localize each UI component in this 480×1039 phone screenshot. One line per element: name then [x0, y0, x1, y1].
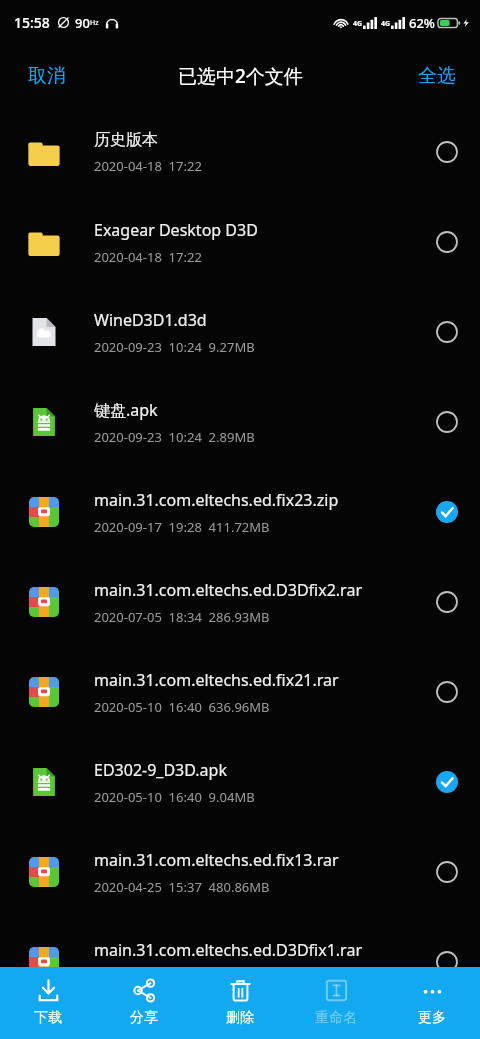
button[interactable]: main.31.com.eltechs.ed.fix13.rar — [0, 827, 480, 917]
button[interactable]: 删除 — [192, 967, 288, 1039]
button[interactable]: 更多 — [384, 967, 480, 1039]
button[interactable]: Not selected — [420, 575, 474, 629]
staticText: 2020-04-20 11:02 280.00MB — [94, 968, 270, 986]
button[interactable]: main.31.com.eltechs.ed.fix23.zip — [0, 467, 480, 557]
staticText: main.31.com.eltechs.ed.fix13.rar — [94, 849, 339, 871]
staticText: 全选 — [418, 64, 456, 88]
button[interactable]: 历史版本 — [0, 107, 480, 197]
staticText: main.31.com.eltechs.ed.fix23.zip — [94, 489, 339, 511]
button[interactable]: 下载 — [0, 967, 96, 1039]
staticText: 4G — [353, 19, 363, 29]
staticText: 2020-04-18 17:22 — [94, 248, 202, 266]
staticText: 90 — [75, 14, 90, 32]
button[interactable]: Not selected — [420, 395, 474, 449]
staticText: 2020-09-23 10:24 9.27MB — [94, 338, 255, 356]
staticText: 取消 — [28, 64, 66, 88]
button[interactable]: Selected — [420, 755, 474, 809]
staticText: WineD3D1.d3d — [94, 309, 207, 331]
staticText: 更多 — [418, 1009, 446, 1027]
staticText: 4G — [381, 19, 391, 29]
button[interactable]: Not selected — [420, 125, 474, 179]
button[interactable]: Selected — [420, 485, 474, 539]
button[interactable]: main.31.com.eltechs.ed.D3Dfix1.rar — [0, 917, 480, 1007]
staticText: 已选中2个文件 — [178, 63, 303, 89]
button[interactable]: Not selected — [420, 215, 474, 269]
staticText: main.31.com.eltechs.ed.D3Dfix2.rar — [94, 579, 362, 601]
button[interactable]: WineD3D1.d3d — [0, 287, 480, 377]
button[interactable]: main.31.com.eltechs.ed.D3Dfix2.rar — [0, 557, 480, 647]
staticText: 历史版本 — [94, 130, 158, 150]
staticText: 下载 — [34, 1009, 62, 1027]
staticText: 2020-04-18 17:22 — [94, 157, 202, 175]
button[interactable]: 分享 — [96, 967, 192, 1039]
button[interactable]: Exagear Desktop D3D — [0, 197, 480, 287]
button[interactable]: 全选 — [394, 52, 480, 100]
staticText: Exagear Desktop D3D — [94, 219, 258, 241]
staticText: 重命名 — [315, 1009, 357, 1027]
staticText: main.31.com.eltechs.ed.D3Dfix1.rar — [94, 939, 362, 961]
staticText: main.31.com.eltechs.ed.fix21.rar — [94, 669, 339, 691]
staticText: 62% — [409, 14, 435, 32]
staticText: 2020-05-10 16:40 636.96MB — [94, 698, 270, 716]
staticText: 2020-04-25 15:37 480.86MB — [94, 878, 270, 896]
button[interactable]: ED302-9_D3D.apk — [0, 737, 480, 827]
staticText: 2020-05-10 16:40 9.04MB — [94, 788, 255, 806]
button[interactable]: Not selected — [420, 665, 474, 719]
staticText: 分享 — [130, 1009, 158, 1027]
button[interactable]: 取消 — [0, 52, 94, 100]
button[interactable]: 重命名 — [288, 967, 384, 1039]
button[interactable]: main.31.com.eltechs.ed.fix21.rar — [0, 647, 480, 737]
button[interactable]: Not selected — [420, 305, 474, 359]
staticText: 2020-07-05 18:34 286.93MB — [94, 608, 270, 626]
staticText: 15:58 — [14, 13, 50, 32]
staticText: ED302-9_D3D.apk — [94, 759, 227, 781]
button[interactable]: 键盘.apk — [0, 377, 480, 467]
staticText: 键盘.apk — [94, 399, 158, 421]
staticText: 2020-09-23 10:24 2.89MB — [94, 428, 255, 446]
staticText: Hz — [90, 18, 99, 28]
staticText: 删除 — [226, 1009, 254, 1027]
staticText: 2020-09-17 19:28 411.72MB — [94, 518, 270, 536]
button[interactable]: Not selected — [420, 935, 474, 989]
button[interactable]: Not selected — [420, 845, 474, 899]
